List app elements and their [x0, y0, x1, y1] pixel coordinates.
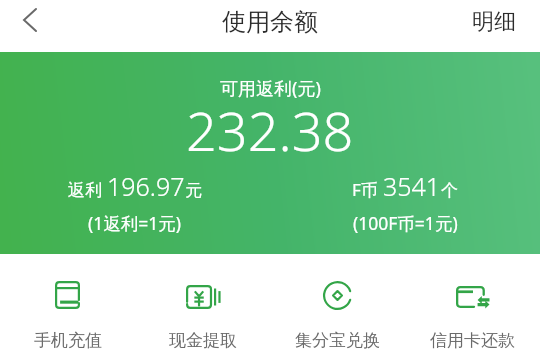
staticText: 明细	[472, 8, 516, 36]
button[interactable]: 手机充值	[0, 279, 135, 351]
staticText: F币	[352, 178, 383, 201]
staticText: 信用卡还款	[430, 330, 515, 351]
button[interactable]: 现金提取	[135, 279, 270, 351]
button[interactable]: F币	[270, 169, 540, 235]
button[interactable]: 信用卡还款	[405, 279, 540, 351]
staticText: 个	[441, 180, 458, 201]
staticText: 返利	[68, 178, 107, 201]
staticText: 可用返利(元)	[220, 76, 321, 101]
button[interactable]: 返利	[0, 169, 270, 235]
staticText: (100F币=1元)	[353, 211, 458, 235]
staticText: 使用余额	[222, 7, 318, 37]
staticText: 元	[185, 180, 202, 201]
staticText: (1返利=1元)	[88, 211, 182, 235]
staticText: 集分宝兑换	[295, 330, 380, 351]
button[interactable]: 明细	[458, 0, 540, 44]
button[interactable]: 集分宝兑换	[270, 279, 405, 351]
staticText: 232.38	[186, 93, 354, 167]
staticText: 3541	[383, 169, 441, 203]
staticText: 196.97	[107, 169, 185, 203]
staticText: 手机充值	[34, 330, 102, 351]
button[interactable]: Back	[8, 0, 52, 42]
staticText: 现金提取	[169, 330, 237, 351]
